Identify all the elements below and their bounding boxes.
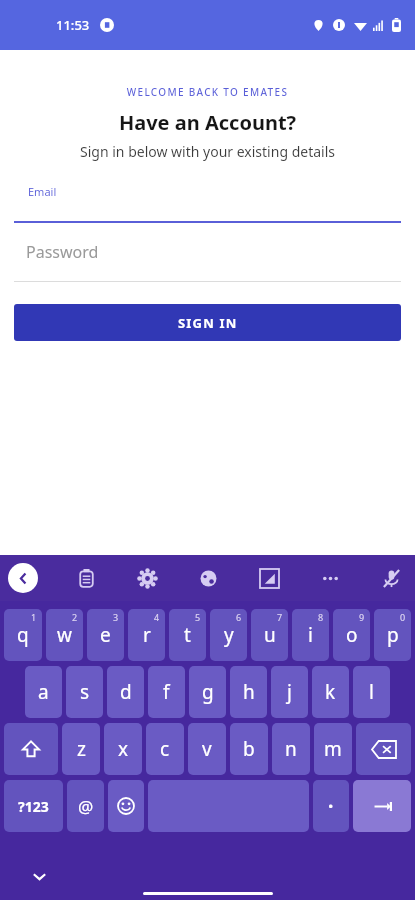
- button[interactable]: w: [46, 609, 83, 661]
- staticText: l: [369, 679, 374, 705]
- button[interactable]: Back: [8, 563, 38, 593]
- staticText: 5: [195, 611, 201, 623]
- staticText: q: [17, 622, 29, 648]
- staticText: y: [224, 622, 234, 648]
- button[interactable]: c: [146, 723, 184, 775]
- button[interactable]: m: [314, 723, 352, 775]
- button[interactable]: Next: [353, 780, 411, 832]
- staticText: i: [308, 622, 313, 648]
- staticText: Email: [28, 184, 57, 199]
- button[interactable]: n: [272, 723, 310, 775]
- staticText: c: [160, 736, 170, 762]
- staticText: u: [264, 622, 276, 648]
- button[interactable]: p: [374, 609, 411, 661]
- button[interactable]: l: [353, 666, 390, 718]
- button[interactable]: r: [128, 609, 165, 661]
- staticText: m: [324, 736, 342, 762]
- staticText: f: [163, 679, 170, 705]
- button[interactable]: q: [4, 609, 42, 661]
- staticText: r: [143, 622, 151, 648]
- staticText: 8: [318, 611, 324, 623]
- staticText: t: [184, 622, 191, 648]
- staticText: Password: [26, 241, 99, 263]
- button[interactable]: v: [188, 723, 226, 775]
- button[interactable]: Settings: [117, 555, 178, 601]
- staticText: h: [243, 679, 255, 705]
- staticText: @: [78, 795, 94, 818]
- button[interactable]: z: [62, 723, 100, 775]
- staticText: e: [100, 622, 111, 648]
- staticText: .: [328, 788, 334, 814]
- button[interactable]: s: [66, 666, 103, 718]
- staticText: j: [287, 679, 292, 705]
- staticText: d: [120, 679, 132, 705]
- button[interactable]: a: [25, 666, 62, 718]
- button[interactable]: Emoji: [108, 780, 144, 832]
- button[interactable]: SIGN IN: [14, 304, 401, 341]
- button[interactable]: Email: [14, 184, 401, 223]
- staticText: a: [38, 679, 49, 705]
- staticText: 7: [277, 611, 283, 623]
- staticText: SIGN IN: [178, 314, 238, 332]
- staticText: 0: [400, 611, 406, 623]
- button[interactable]: j: [271, 666, 308, 718]
- staticText: Sign in below with your existing details: [0, 142, 415, 161]
- staticText: ?123: [18, 797, 49, 816]
- staticText: g: [202, 679, 214, 705]
- button[interactable]: Password: [14, 241, 401, 282]
- button[interactable]: @: [67, 780, 104, 832]
- button[interactable]: k: [312, 666, 349, 718]
- button[interactable]: y: [210, 609, 247, 661]
- staticText: 11:53: [56, 16, 90, 34]
- staticText: k: [325, 679, 336, 705]
- staticText: o: [346, 622, 358, 648]
- button[interactable]: Theme: [178, 555, 239, 601]
- staticText: 1: [31, 611, 37, 623]
- button[interactable]: Microphone off: [361, 555, 415, 601]
- button[interactable]: ?123: [4, 780, 63, 832]
- staticText: w: [57, 622, 72, 648]
- button[interactable]: Hide keyboard: [24, 861, 54, 891]
- button[interactable]: g: [189, 666, 226, 718]
- staticText: s: [80, 679, 90, 705]
- staticText: n: [285, 736, 297, 762]
- staticText: z: [77, 736, 86, 762]
- button[interactable]: Shift: [4, 723, 58, 775]
- staticText: 3: [113, 611, 119, 623]
- staticText: v: [202, 736, 212, 762]
- button[interactable]: t: [169, 609, 206, 661]
- button[interactable]: b: [230, 723, 268, 775]
- button[interactable]: .: [313, 780, 349, 832]
- button[interactable]: More options: [300, 555, 361, 601]
- staticText: Have an Account?: [0, 109, 415, 136]
- button[interactable]: Backspace: [356, 723, 411, 775]
- button[interactable]: i: [292, 609, 329, 661]
- button[interactable]: e: [87, 609, 124, 661]
- staticText: 9: [359, 611, 365, 623]
- staticText: 6: [236, 611, 242, 623]
- staticText: p: [387, 622, 399, 648]
- button[interactable]: f: [148, 666, 185, 718]
- staticText: 2: [72, 611, 78, 623]
- button[interactable]: h: [230, 666, 267, 718]
- button[interactable]: u: [251, 609, 288, 661]
- button[interactable]: Clipboard: [56, 555, 117, 601]
- staticText: WELCOME BACK TO EMATES: [0, 85, 415, 99]
- button[interactable]: o: [333, 609, 370, 661]
- staticText: b: [243, 736, 255, 762]
- staticText: 4: [154, 611, 160, 623]
- button[interactable]: x: [104, 723, 142, 775]
- button[interactable]: Resize: [239, 555, 300, 601]
- button[interactable]: d: [107, 666, 144, 718]
- staticText: x: [118, 736, 129, 762]
